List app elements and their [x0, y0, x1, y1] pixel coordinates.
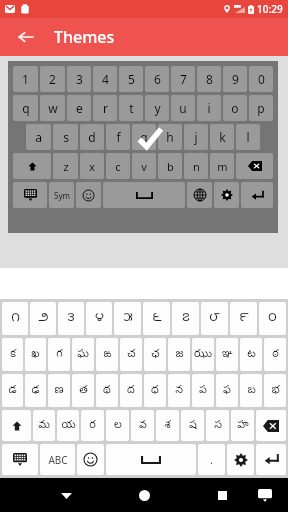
button[interactable]: ఖ: [25, 338, 46, 371]
button[interactable]: m: [210, 153, 234, 179]
button[interactable]: [256, 444, 286, 475]
button[interactable]: ౫: [114, 302, 141, 335]
button[interactable]: Recents: [208, 481, 236, 509]
button[interactable]: s: [53, 124, 78, 150]
button[interactable]: k: [210, 124, 234, 150]
button[interactable]: 6: [145, 66, 169, 92]
button[interactable]: ౧: [2, 302, 28, 335]
button[interactable]: ౪: [86, 302, 112, 335]
button[interactable]: d: [80, 124, 104, 150]
button[interactable]: Sym: [49, 182, 74, 208]
button[interactable]: త: [72, 374, 94, 407]
button[interactable]: 5: [119, 66, 143, 92]
button[interactable]: x: [80, 153, 104, 179]
button[interactable]: Back: [52, 481, 80, 509]
button[interactable]: Back: [12, 23, 40, 51]
button[interactable]: Home: [130, 481, 158, 509]
button[interactable]: ర: [81, 410, 104, 441]
button[interactable]: h: [158, 124, 182, 150]
button[interactable]: ట: [240, 338, 262, 371]
button[interactable]: [256, 410, 286, 441]
button[interactable]: 1: [13, 66, 38, 92]
button[interactable]: ABC: [40, 444, 75, 475]
button[interactable]: 2: [40, 66, 65, 92]
button[interactable]: వ: [131, 410, 154, 441]
button[interactable]: బ: [240, 374, 262, 407]
button[interactable]: ౭: [172, 302, 199, 335]
button[interactable]: 4: [93, 66, 117, 92]
button[interactable]: p: [249, 95, 273, 121]
button[interactable]: [13, 182, 47, 208]
button[interactable]: హ: [231, 410, 254, 441]
button[interactable]: [2, 444, 38, 475]
button[interactable]: v: [132, 153, 156, 179]
button[interactable]: t: [119, 95, 143, 121]
button[interactable]: n: [184, 153, 208, 179]
button[interactable]: ౦: [259, 302, 286, 335]
button[interactable]: స: [206, 410, 229, 441]
button[interactable]: డ: [2, 374, 23, 407]
button[interactable]: క: [2, 338, 23, 371]
button[interactable]: [103, 182, 185, 208]
button[interactable]: c: [106, 153, 130, 179]
button[interactable]: మ: [33, 410, 55, 441]
button[interactable]: ౮: [201, 302, 228, 335]
button[interactable]: i: [197, 95, 221, 121]
button[interactable]: ల: [106, 410, 129, 441]
button[interactable]: r: [93, 95, 117, 121]
button[interactable]: e: [67, 95, 91, 121]
button[interactable]: .: [198, 444, 225, 475]
button[interactable]: భ: [264, 374, 286, 407]
button[interactable]: ౯: [230, 302, 257, 335]
button[interactable]: ష: [181, 410, 204, 441]
button[interactable]: చ: [120, 338, 142, 371]
button[interactable]: o: [223, 95, 247, 121]
button[interactable]: న: [168, 374, 190, 407]
button[interactable]: 8: [197, 66, 221, 92]
button[interactable]: [227, 444, 254, 475]
button[interactable]: [77, 444, 104, 475]
button[interactable]: ణ: [48, 374, 70, 407]
button[interactable]: b: [158, 153, 182, 179]
button[interactable]: ఢ: [25, 374, 46, 407]
button[interactable]: ఙ: [96, 338, 118, 371]
button[interactable]: 1: [8, 61, 278, 233]
button[interactable]: [187, 182, 212, 208]
button[interactable]: ప: [192, 374, 214, 407]
button[interactable]: థ: [96, 374, 118, 407]
button[interactable]: [13, 153, 51, 179]
button[interactable]: ౬: [143, 302, 170, 335]
button[interactable]: Switch keyboard: [252, 482, 278, 508]
button[interactable]: 9: [223, 66, 247, 92]
button[interactable]: [76, 182, 101, 208]
button[interactable]: జ: [168, 338, 190, 371]
button[interactable]: శ: [156, 410, 179, 441]
button[interactable]: ౨: [30, 302, 56, 335]
button[interactable]: a: [26, 124, 51, 150]
button[interactable]: ద: [120, 374, 142, 407]
button[interactable]: [241, 182, 273, 208]
button[interactable]: ఘ: [72, 338, 94, 371]
button[interactable]: [214, 182, 239, 208]
button[interactable]: 0: [249, 66, 273, 92]
button[interactable]: j: [184, 124, 208, 150]
button[interactable]: u: [171, 95, 195, 121]
button[interactable]: ధ: [144, 374, 166, 407]
button[interactable]: ౩: [58, 302, 84, 335]
button[interactable]: 7: [171, 66, 195, 92]
button[interactable]: l: [236, 124, 260, 150]
button[interactable]: 3: [67, 66, 91, 92]
button[interactable]: ఞ: [216, 338, 238, 371]
button[interactable]: y: [145, 95, 169, 121]
button[interactable]: w: [40, 95, 65, 121]
button[interactable]: ఛ: [144, 338, 166, 371]
button[interactable]: q: [13, 95, 38, 121]
button[interactable]: g: [132, 124, 156, 150]
button[interactable]: f: [106, 124, 130, 150]
button[interactable]: z: [53, 153, 78, 179]
button[interactable]: య: [57, 410, 79, 441]
button[interactable]: ఠ: [264, 338, 286, 371]
button[interactable]: [2, 410, 31, 441]
button[interactable]: [106, 444, 196, 475]
button[interactable]: ఝు: [192, 338, 214, 371]
